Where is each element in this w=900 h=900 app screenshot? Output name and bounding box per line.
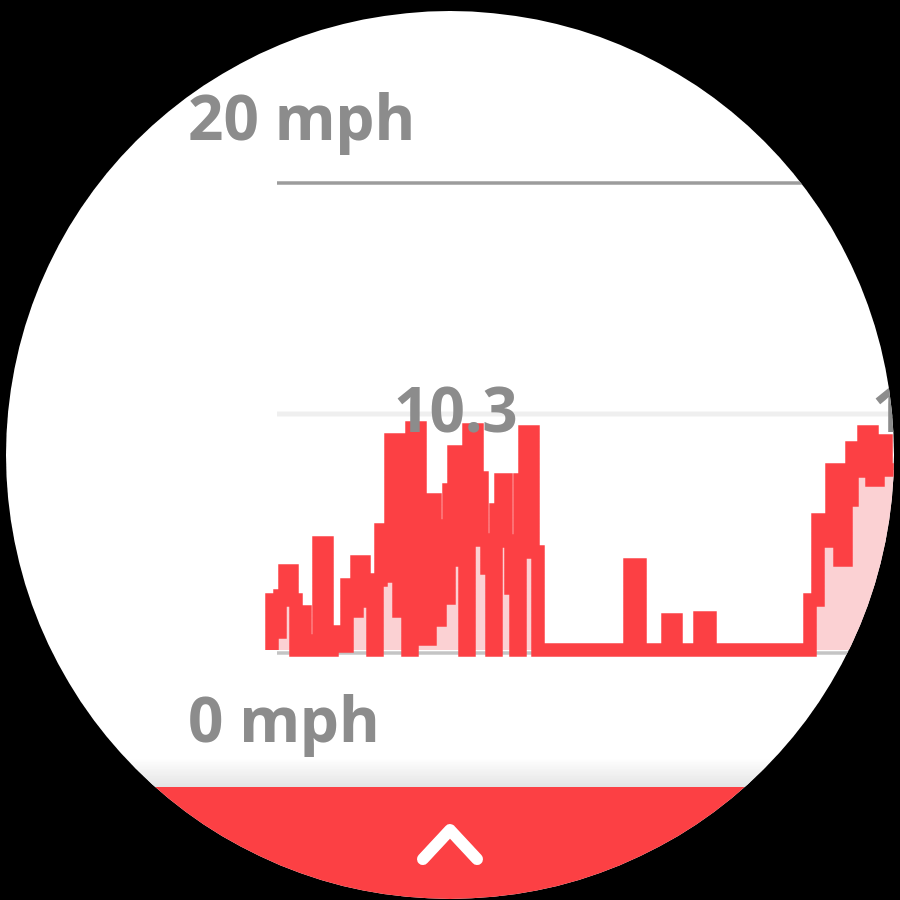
button[interactable]: Speed chart, 10.3 mph average <box>0 0 900 900</box>
button[interactable]: Scroll up <box>0 0 900 900</box>
